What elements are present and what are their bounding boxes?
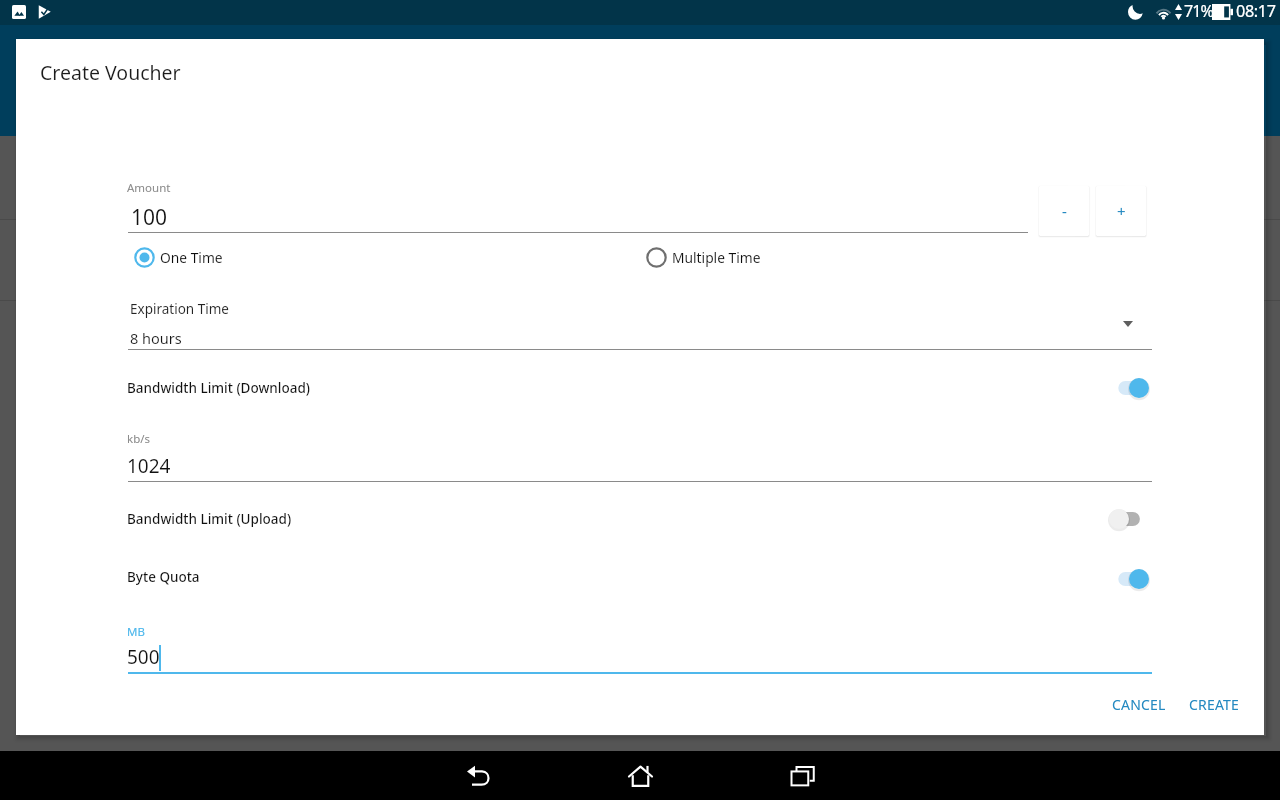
staticText: 8 hours [130,328,182,348]
staticText: Create Voucher [40,59,181,86]
staticText: Multiple Time [672,248,761,267]
staticText: 1024 [127,453,171,479]
button[interactable]: Home [608,752,672,800]
button[interactable]: Recent apps [770,752,834,800]
staticText: Bandwidth Limit (Download) [127,379,311,397]
button[interactable]: Expiration Time [124,296,1156,351]
staticText: One Time [160,248,223,267]
button[interactable]: One Time [128,241,229,273]
button[interactable]: Increase amount [1096,186,1146,236]
staticText: 500 [127,644,160,670]
staticText: 100 [131,203,168,232]
staticText: kb/s [127,431,150,447]
button[interactable]: Bandwidth Limit (Upload) [122,502,1155,536]
staticText: 08:17 [1236,0,1276,22]
staticText: - [1062,201,1067,221]
button[interactable]: Decrease amount [1039,186,1089,236]
button[interactable]: Back [446,752,510,800]
staticText: Amount [127,180,171,196]
button[interactable]: CANCEL [1100,683,1178,726]
button[interactable]: Byte Quota [122,560,1155,594]
staticText: Byte Quota [127,568,200,586]
staticText: Expiration Time [130,300,229,318]
button[interactable]: Multiple Time [640,241,767,273]
staticText: CANCEL [1112,695,1166,714]
staticText: Bandwidth Limit (Upload) [127,510,292,528]
staticText: MB [127,624,145,640]
staticText: CREATE [1189,695,1240,714]
staticText: 71% [1184,0,1214,22]
staticText: + [1117,201,1126,221]
button[interactable]: Bandwidth Limit (Download) [122,371,1155,405]
button[interactable]: CREATE [1177,683,1252,726]
